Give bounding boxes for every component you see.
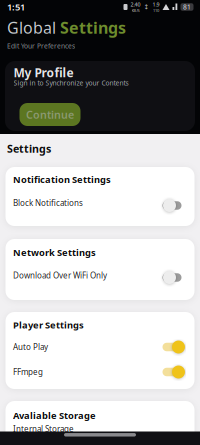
staticText: 1.9	[152, 1, 159, 8]
staticText: Edit Your Preferences	[7, 42, 75, 50]
staticText: Global	[7, 17, 60, 38]
button[interactable]: Auto Play	[161, 340, 184, 353]
staticText: Settings	[7, 141, 51, 156]
staticText: Player Settings	[13, 319, 84, 331]
staticText: Continue	[26, 107, 74, 122]
staticText: Sign in to Synchronize your Contents	[13, 79, 128, 87]
staticText: KB/S	[131, 8, 139, 13]
button[interactable]: Continue	[19, 103, 80, 126]
button[interactable]: Download Over WiFi Only	[161, 271, 184, 284]
staticText: 1:51	[7, 1, 25, 13]
staticText: Download Over WiFi Only	[13, 270, 107, 281]
staticText: Notification Settings	[13, 173, 111, 186]
staticText: Network Settings	[13, 246, 96, 259]
staticText: 81	[183, 3, 191, 11]
staticText: My Profile	[13, 64, 73, 80]
staticText: ↕	[143, 3, 149, 11]
button[interactable]: FFmpeg	[161, 365, 184, 378]
staticText: Block Notifications	[13, 198, 83, 208]
button[interactable]: Block Notifications	[161, 199, 184, 212]
staticText: 2.40	[130, 1, 140, 8]
staticText: 110	[153, 8, 159, 13]
staticText: Avaliable Storage	[13, 409, 96, 422]
staticText: Settings	[60, 17, 126, 38]
staticText: Auto Play	[13, 342, 48, 352]
staticText: Internal Storage	[13, 424, 74, 434]
staticText: FFmpeg	[13, 367, 43, 377]
